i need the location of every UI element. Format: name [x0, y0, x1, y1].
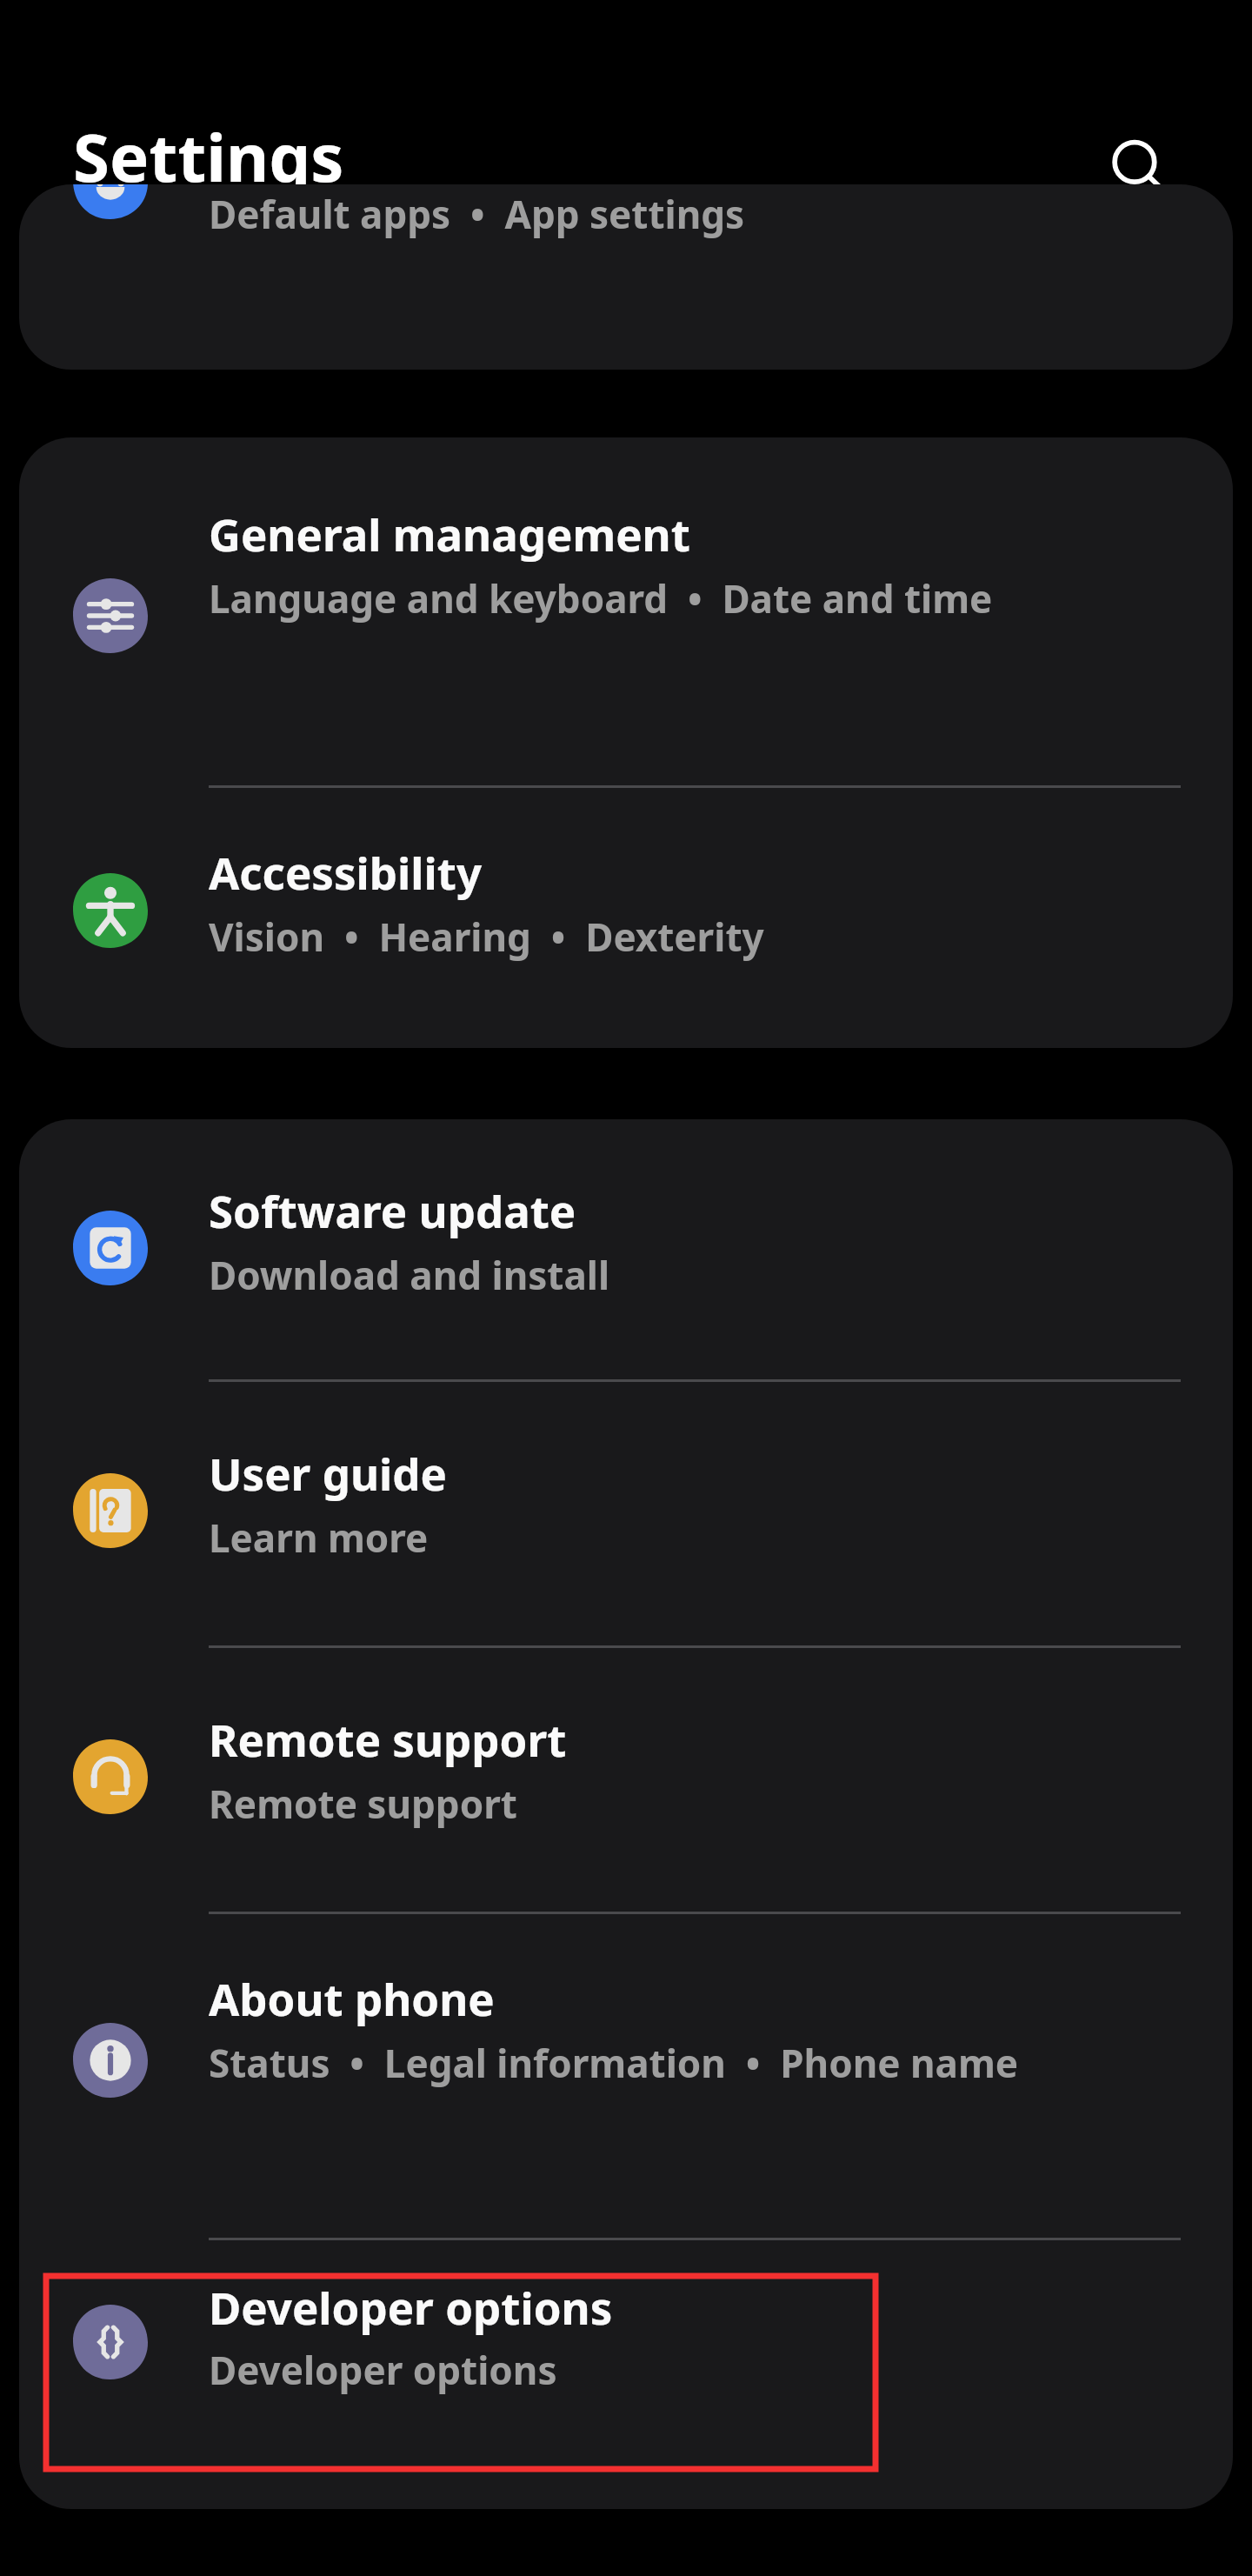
staticText: Learn more: [209, 1512, 429, 1564]
staticText: Accessibility: [209, 842, 483, 902]
staticText: Default apps • App settings: [209, 188, 745, 240]
staticText: Remote support: [209, 1778, 517, 1830]
staticText: Language and keyboard • Date and time: [209, 572, 993, 624]
staticText: User guide: [209, 1443, 447, 1503]
button[interactable]: Developer options: [19, 2240, 1233, 2509]
staticText: Settings: [73, 111, 344, 202]
button[interactable]: Search: [1091, 120, 1189, 217]
staticText: General management: [209, 504, 690, 564]
button[interactable]: Accessibility: [19, 788, 1233, 1048]
staticText: Developer options: [209, 2277, 613, 2337]
staticText: Software update: [209, 1180, 576, 1240]
button[interactable]: Default apps • App settings: [19, 184, 1233, 370]
staticText: Status • Legal information • Phone name: [209, 2037, 1019, 2089]
button[interactable]: General management: [19, 437, 1233, 785]
button[interactable]: About phone: [19, 1914, 1233, 2238]
staticText: Vision • Hearing • Dexterity: [209, 911, 764, 963]
staticText: Developer options: [209, 2344, 557, 2396]
staticText: About phone: [209, 1968, 495, 2028]
staticText: Remote support: [209, 1709, 567, 1769]
button[interactable]: Remote support: [19, 1648, 1233, 1912]
button[interactable]: Software update: [19, 1119, 1233, 1379]
staticText: Download and install: [209, 1249, 610, 1301]
button[interactable]: User guide: [19, 1382, 1233, 1645]
